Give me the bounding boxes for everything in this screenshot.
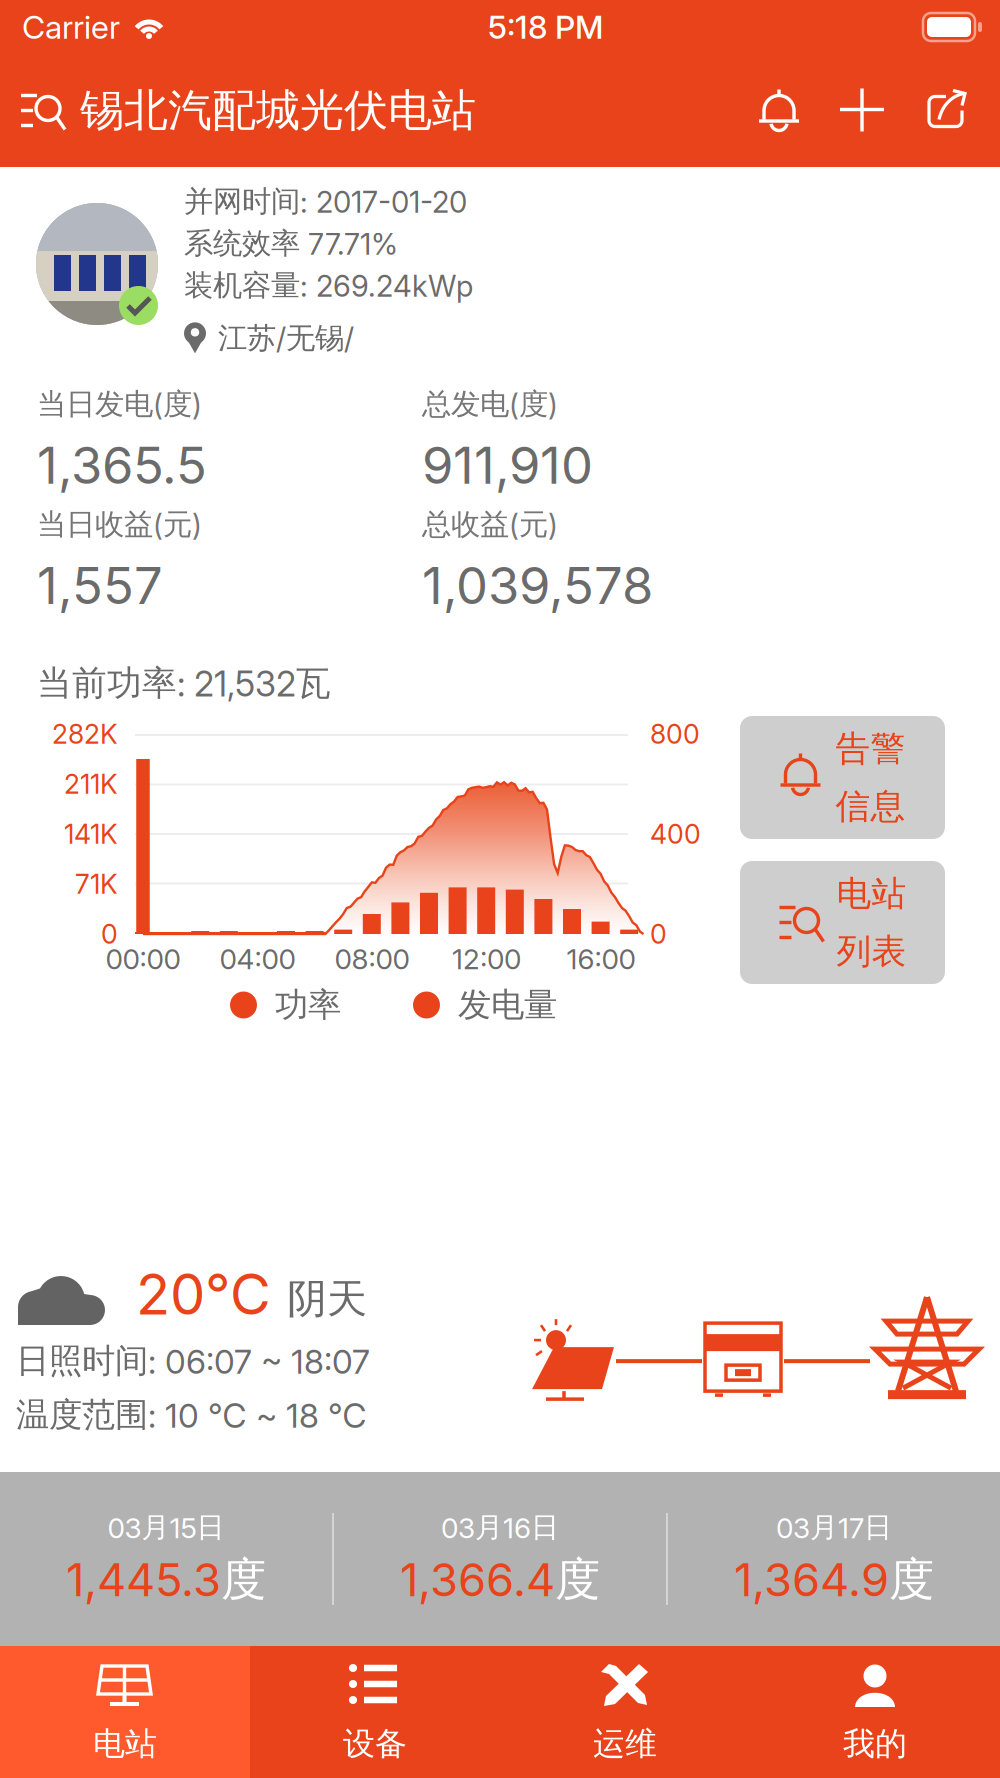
- staticText: 20℃: [136, 1260, 271, 1328]
- staticText: 04:00: [219, 942, 295, 976]
- staticText: 00:00: [105, 942, 180, 976]
- staticText: 总收益(元): [422, 506, 558, 543]
- staticText: 运维: [593, 1724, 657, 1764]
- button[interactable]: 运维: [500, 1646, 750, 1778]
- staticText: 800: [650, 718, 700, 750]
- staticText: 日照时间: 06:07 ~ 18:07: [16, 1340, 370, 1382]
- button[interactable]: 分享: [904, 68, 988, 152]
- staticText: 江苏/无锡/: [218, 320, 354, 357]
- staticText: 400: [650, 818, 701, 850]
- button[interactable]: 告警: [740, 716, 945, 839]
- staticText: 阴天: [287, 1274, 367, 1324]
- staticText: 温度范围: 10 ℃ ~ 18 ℃: [16, 1394, 367, 1436]
- staticText: 总发电(度): [422, 386, 558, 423]
- staticText: 信息: [835, 784, 905, 828]
- staticText: 设备: [343, 1724, 407, 1764]
- staticText: 911,910: [422, 435, 593, 496]
- button[interactable]: 锡北汽配城光伏电站: [0, 63, 476, 158]
- staticText: 141K: [64, 818, 118, 850]
- staticText: 03月15日: [107, 1510, 224, 1545]
- button[interactable]: 告警通知: [738, 68, 820, 152]
- staticText: 03月17日: [776, 1510, 892, 1545]
- staticText: 1,364.9: [734, 1552, 889, 1607]
- staticText: 度: [889, 1551, 934, 1608]
- button[interactable]: 电站: [0, 1646, 250, 1778]
- staticText: 16:00: [566, 942, 635, 976]
- staticText: 71K: [75, 868, 118, 900]
- staticText: 当日收益(元): [37, 506, 202, 543]
- staticText: 1,365.5: [37, 435, 207, 496]
- button[interactable]: 添加电站: [820, 68, 904, 152]
- staticText: 当日发电(度): [37, 386, 202, 423]
- staticText: 锡北汽配城光伏电站: [80, 83, 476, 138]
- staticText: 03月16日: [441, 1510, 559, 1545]
- staticText: 0: [101, 918, 118, 950]
- staticText: 我的: [843, 1724, 907, 1764]
- staticText: 08:00: [334, 942, 409, 976]
- staticText: 并网时间: 2017-01-20: [184, 183, 467, 220]
- staticText: 12:00: [452, 942, 521, 976]
- staticText: 1,557: [37, 555, 163, 616]
- staticText: 列表: [836, 929, 906, 973]
- staticText: 1,445.3: [66, 1552, 221, 1607]
- staticText: 系统效率 77.71%: [184, 225, 398, 262]
- staticText: 1,366.4: [400, 1552, 555, 1607]
- staticText: 282K: [52, 718, 118, 750]
- staticText: 电站: [836, 872, 906, 915]
- staticText: 度: [221, 1551, 266, 1608]
- button[interactable]: 我的: [750, 1646, 1000, 1778]
- staticText: 电站: [93, 1724, 157, 1764]
- staticText: 211K: [64, 768, 118, 800]
- staticText: 装机容量: 269.24kWp: [184, 267, 473, 304]
- staticText: 发电量: [458, 984, 557, 1026]
- staticText: 5:18 PM: [488, 8, 603, 46]
- staticText: 当前功率: 21,532瓦: [37, 661, 331, 705]
- staticText: 功率: [275, 984, 341, 1026]
- staticText: Carrier: [22, 8, 120, 46]
- staticText: 1,039,578: [422, 555, 653, 616]
- staticText: 度: [555, 1551, 600, 1608]
- staticText: 告警: [835, 727, 905, 770]
- staticText: 0: [650, 918, 667, 950]
- button[interactable]: 设备: [250, 1646, 500, 1778]
- button[interactable]: 电站: [740, 861, 945, 984]
